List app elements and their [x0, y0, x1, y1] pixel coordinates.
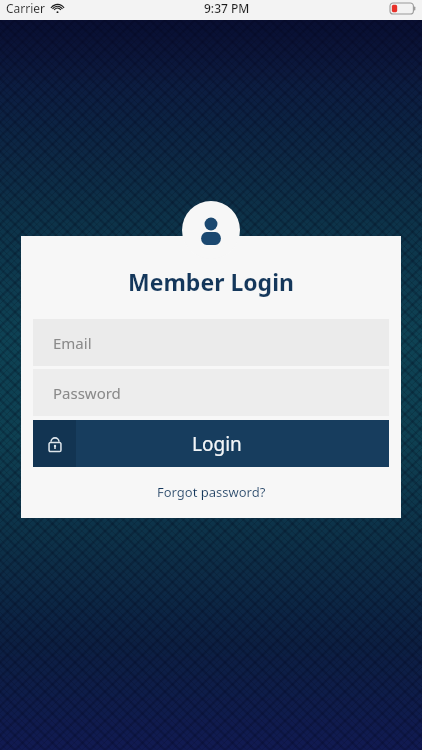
staticText: Member Login	[128, 266, 294, 297]
staticText: Password	[53, 383, 121, 403]
button[interactable]: Forgot password?	[147, 480, 276, 504]
staticText: Email	[53, 333, 92, 353]
staticText: 9:37 PM	[204, 0, 250, 16]
staticText: Login	[192, 431, 242, 457]
other: Profile avatar	[182, 201, 240, 259]
button[interactable]: Password	[33, 369, 389, 416]
button[interactable]: Email	[33, 319, 389, 366]
staticText: Carrier	[6, 0, 46, 16]
staticText: Forgot password?	[157, 483, 266, 501]
button[interactable]: Login	[33, 420, 389, 467]
